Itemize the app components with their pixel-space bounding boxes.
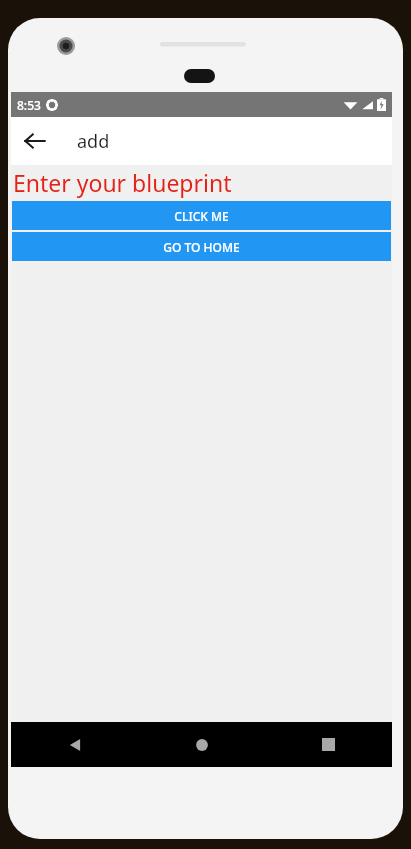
button[interactable]: GO TO HOME: [12, 232, 391, 261]
button[interactable]: CLICK ME: [12, 201, 391, 230]
staticText: add: [77, 129, 110, 154]
button[interactable]: Back: [11, 117, 59, 165]
staticText: CLICK ME: [174, 208, 229, 224]
staticText: GO TO HOME: [163, 239, 240, 255]
button[interactable]: Back: [11, 722, 138, 767]
button[interactable]: Recents: [265, 722, 392, 767]
staticText: 8:53: [17, 97, 41, 113]
staticText: Enter your blueprint: [13, 167, 232, 198]
button[interactable]: Home: [138, 722, 265, 767]
